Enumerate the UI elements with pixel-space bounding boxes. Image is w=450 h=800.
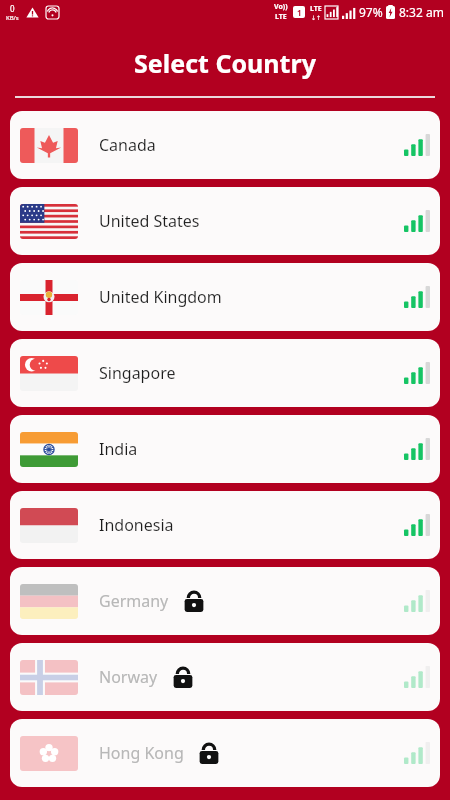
button[interactable]: Singapore bbox=[10, 339, 440, 407]
staticText: KB/s bbox=[6, 14, 19, 22]
other: Locked bbox=[181, 588, 207, 614]
staticText: LTE bbox=[310, 4, 322, 14]
staticText: India bbox=[99, 438, 138, 460]
staticText: 97% bbox=[359, 4, 383, 20]
button[interactable]: Germany bbox=[10, 567, 440, 635]
staticText: Norway bbox=[99, 666, 158, 688]
staticText: LTE bbox=[275, 12, 287, 22]
staticText: Canada bbox=[99, 134, 156, 156]
button[interactable]: Indonesia bbox=[10, 491, 440, 559]
button[interactable]: Canada bbox=[10, 111, 440, 179]
button[interactable]: Norway bbox=[10, 643, 440, 711]
staticText: Select Country bbox=[0, 46, 450, 80]
other: Locked bbox=[196, 740, 222, 766]
staticText: Hong Kong bbox=[99, 742, 184, 764]
button[interactable]: United States bbox=[10, 187, 440, 255]
button[interactable]: United Kingdom bbox=[10, 263, 440, 331]
staticText: Germany bbox=[99, 590, 169, 612]
staticText: 1 bbox=[297, 7, 302, 18]
staticText: United States bbox=[99, 210, 200, 232]
staticText: Indonesia bbox=[99, 514, 174, 536]
staticText: Vo)) bbox=[274, 2, 288, 12]
staticText: Singapore bbox=[99, 362, 176, 384]
button[interactable]: India bbox=[10, 415, 440, 483]
other: Locked bbox=[170, 664, 196, 690]
staticText: United Kingdom bbox=[99, 286, 222, 308]
staticText: 0 bbox=[10, 3, 15, 14]
button[interactable]: Hong Kong bbox=[10, 719, 440, 787]
staticText: 8:32 am bbox=[399, 4, 444, 20]
staticText: ↓↑ bbox=[311, 14, 322, 21]
